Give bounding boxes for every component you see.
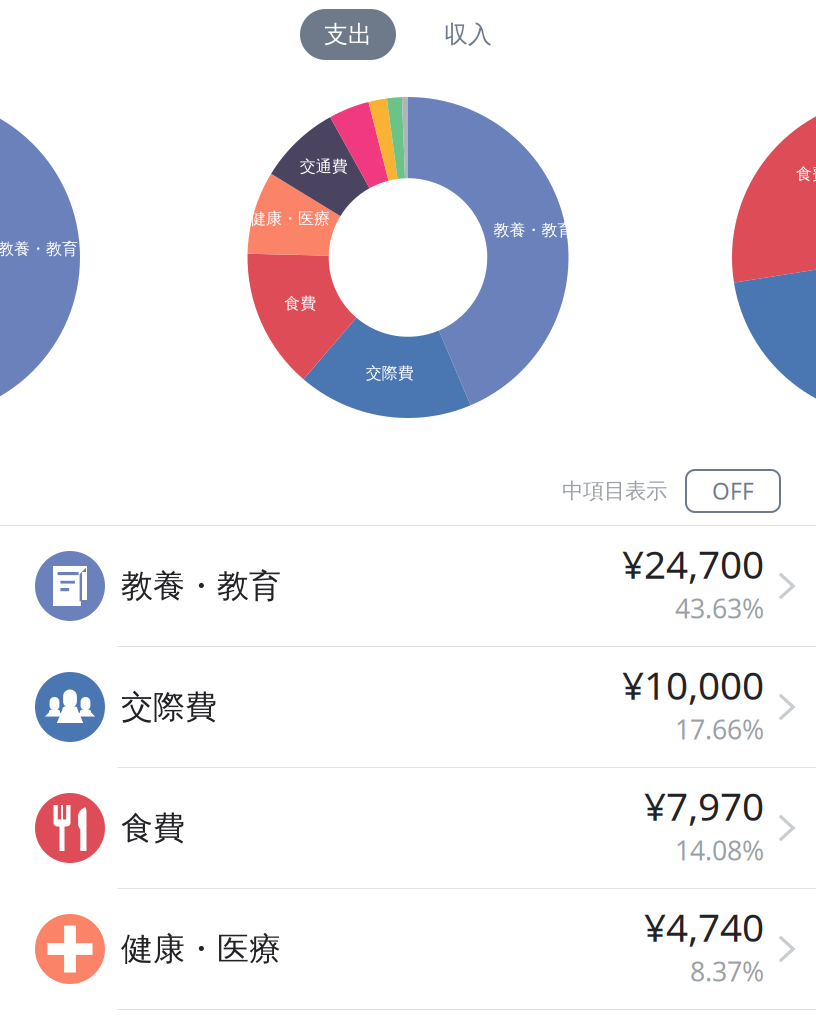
staticText: 交通費 <box>300 157 348 176</box>
button[interactable]: OFF <box>686 470 780 512</box>
staticText: 食費 <box>796 164 816 184</box>
button[interactable]: 収入 <box>420 9 516 60</box>
button[interactable]: 食費 <box>0 768 816 889</box>
staticText: 8.37% <box>690 953 764 989</box>
staticText: 教養・教育 <box>493 220 573 240</box>
staticText: 食費 <box>121 808 185 848</box>
staticText: ¥24,700 <box>622 538 764 589</box>
staticText: OFF <box>712 476 754 506</box>
staticText: 教養・教育 <box>0 239 78 259</box>
staticText: 食費 <box>284 294 316 313</box>
button[interactable]: 教養・教育 <box>0 526 816 647</box>
staticText: 健康・医療 <box>250 209 330 229</box>
staticText: 17.66% <box>675 711 764 747</box>
staticText: ¥4,740 <box>644 901 764 952</box>
button[interactable]: 支出 <box>300 9 396 60</box>
staticText: 交際費 <box>366 363 414 383</box>
staticText: 支出 <box>324 20 372 49</box>
button[interactable]: 健康・医療 <box>0 889 816 1010</box>
staticText: ¥10,000 <box>622 659 764 710</box>
staticText: 健康・医療 <box>121 929 281 969</box>
staticText: 収入 <box>444 20 492 49</box>
staticText: 教養・教育 <box>121 566 281 606</box>
staticText: 14.08% <box>675 832 764 868</box>
button[interactable]: 交際費 <box>0 647 816 768</box>
staticText: ¥7,970 <box>644 780 764 831</box>
staticText: 中項目表示 <box>562 478 667 504</box>
staticText: 交際費 <box>121 687 217 727</box>
staticText: 43.63% <box>675 590 764 626</box>
